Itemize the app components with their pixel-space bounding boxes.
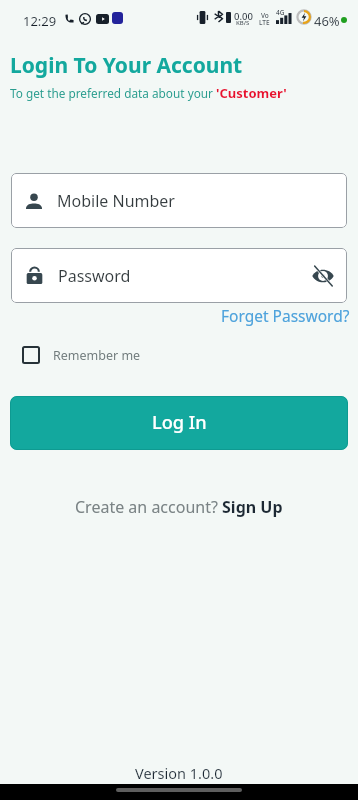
button[interactable]: Show password [311,264,335,288]
button[interactable]: Password [11,248,347,303]
staticText: 4G [276,8,285,17]
staticText: Version 1.0.0 [135,763,223,783]
staticText: LTE [259,18,270,27]
staticText: To get the preferred data about your 'Cu… [10,84,287,102]
staticText: Mobile Number [57,190,175,212]
staticText: Password [58,265,131,287]
staticText: Login To Your Account [10,51,243,80]
button[interactable]: Forget Password? [221,303,358,328]
staticText: 0.00 [234,10,253,23]
button[interactable]: Log In [10,396,348,450]
button[interactable]: Create an account? Sign Up [72,493,286,521]
staticText: 12:29 [23,12,57,30]
staticText: Vo [261,11,269,20]
staticText: Create an account? Sign Up [75,496,283,518]
button[interactable]: Mobile Number [11,173,347,228]
staticText: KB/S [236,19,250,27]
button[interactable]: Remember me [20,344,143,366]
staticText: 46% [314,12,340,30]
staticText: Forget Password? [221,305,350,326]
staticText: Remember me [53,347,141,364]
staticText: Log In [152,410,207,435]
